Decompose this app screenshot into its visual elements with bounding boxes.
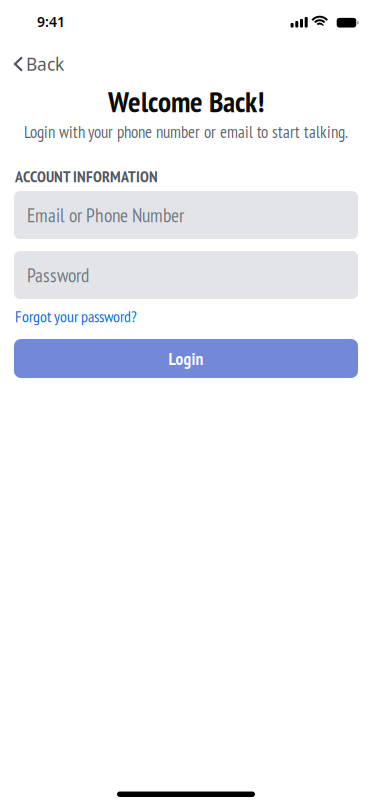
staticText: Login with your phone number or email to…: [24, 121, 348, 143]
staticText: ACCOUNT INFORMATION: [15, 166, 158, 187]
staticText: Forgot your password?: [15, 306, 137, 327]
staticText: 9:41: [37, 12, 65, 31]
button[interactable]: Back: [0, 55, 64, 73]
button[interactable]: Forgot your password?: [15, 306, 137, 327]
staticText: Welcome Back!: [108, 82, 264, 120]
staticText: Email or Phone Number: [27, 202, 184, 227]
staticText: Login: [168, 347, 203, 370]
staticText: Back: [26, 52, 64, 76]
button[interactable]: Login: [14, 339, 358, 378]
staticText: Password: [27, 262, 89, 287]
